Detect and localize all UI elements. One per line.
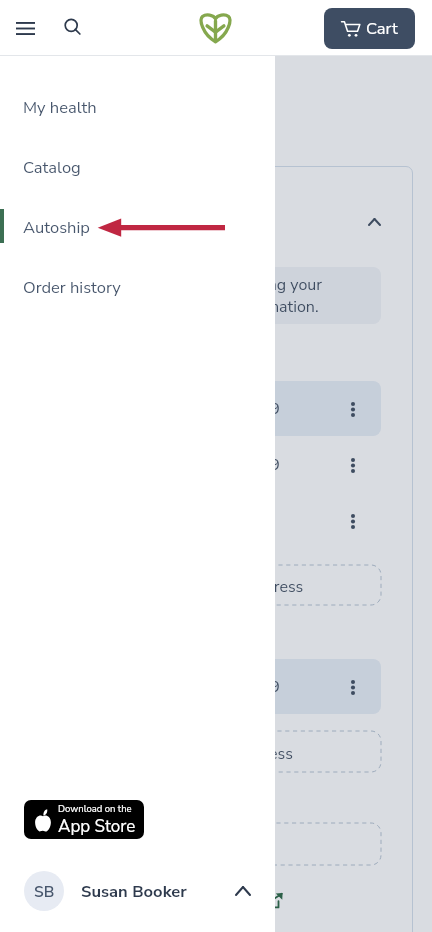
button[interactable]: Download on the App Store xyxy=(24,800,144,839)
button[interactable]: Collapse account menu xyxy=(230,878,256,904)
button[interactable]: Home xyxy=(193,6,237,50)
staticText: Cart xyxy=(366,17,398,40)
button[interactable]: You can add a new delivery address xyxy=(31,565,381,605)
button[interactable]: More options xyxy=(342,510,364,532)
staticText: App Store xyxy=(58,815,136,838)
staticText: Autoship xyxy=(23,216,90,239)
button[interactable]: Cart xyxy=(324,8,415,49)
button[interactable]: More options xyxy=(342,454,364,476)
button[interactable]: More options xyxy=(31,493,381,548)
button[interactable]: Catalog xyxy=(0,136,275,196)
staticText: A short note for you about saving your xyxy=(47,274,323,296)
button[interactable]: More options xyxy=(342,676,364,698)
staticText: Catalog xyxy=(23,156,81,179)
staticText: Download on the xyxy=(58,802,132,815)
staticText: Order history xyxy=(23,276,121,299)
staticText: Susan Booker xyxy=(81,880,187,903)
button[interactable]: SB xyxy=(0,863,275,919)
button[interactable]: Open external link xyxy=(265,890,285,910)
staticText: My health xyxy=(23,96,97,119)
button[interactable]: Order history xyxy=(0,256,275,316)
button[interactable]: Collapse section xyxy=(363,211,385,233)
button[interactable]: Susan Booker, Visa ending 4009 xyxy=(31,437,381,492)
staticText: SB xyxy=(34,881,55,902)
button[interactable] xyxy=(31,823,381,865)
button[interactable]: Susan Booker, Visa ending 4009 xyxy=(31,659,381,714)
staticText: Susan Booker, Visa ending 4009 xyxy=(47,676,280,698)
button[interactable]: My health xyxy=(0,76,275,136)
button[interactable]: More options xyxy=(342,398,364,420)
button[interactable]: Open navigation menu xyxy=(5,8,45,48)
staticText: Add or update your saved address xyxy=(47,743,293,765)
button[interactable]: Add or update your saved address xyxy=(31,731,381,772)
button[interactable]: Search xyxy=(52,8,92,48)
staticText: Susan Booker, Visa ending 4009 xyxy=(47,454,280,476)
button[interactable]: Autoship xyxy=(0,196,275,256)
staticText: Susan Booker, Visa ending 4009 xyxy=(47,398,280,420)
staticText: You can add a new delivery address xyxy=(47,576,304,598)
button[interactable]: Susan Booker, Visa ending 4009 xyxy=(31,381,381,436)
staticText: your details and payment information. xyxy=(47,296,319,318)
